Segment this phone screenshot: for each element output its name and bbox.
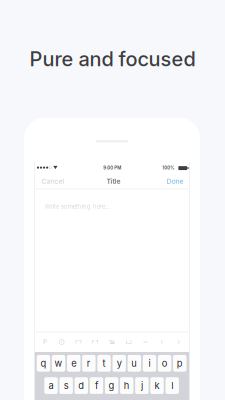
staticText: w bbox=[55, 358, 63, 369]
button[interactable]: Formatting option bbox=[58, 337, 66, 346]
staticText: u bbox=[131, 358, 137, 369]
button[interactable]: k bbox=[150, 377, 164, 394]
staticText: Write something here… bbox=[45, 203, 110, 210]
staticText: a bbox=[48, 380, 53, 391]
staticText: k bbox=[154, 380, 159, 391]
button[interactable]: g bbox=[105, 377, 118, 394]
button[interactable]: Formatting option bbox=[74, 337, 82, 346]
button[interactable]: Formatting option bbox=[108, 337, 116, 346]
staticText: i bbox=[148, 358, 150, 369]
staticText: j bbox=[141, 380, 143, 391]
button[interactable]: j bbox=[135, 377, 149, 394]
button[interactable]: d bbox=[75, 377, 88, 394]
staticText: e bbox=[71, 358, 76, 369]
staticText: h bbox=[124, 380, 130, 391]
staticText: 100% bbox=[162, 165, 174, 170]
button[interactable]: e bbox=[67, 355, 80, 372]
staticText: p bbox=[177, 358, 183, 369]
button[interactable]: r bbox=[82, 355, 96, 372]
button[interactable]: p bbox=[173, 355, 186, 372]
staticText: q bbox=[40, 358, 46, 369]
button[interactable]: u bbox=[128, 355, 141, 372]
staticText: o bbox=[162, 358, 168, 369]
staticText: t bbox=[102, 358, 105, 369]
button[interactable]: q bbox=[37, 355, 50, 372]
button[interactable]: Formatting option bbox=[41, 337, 49, 346]
staticText: r bbox=[87, 358, 91, 369]
staticText: Pure and focused bbox=[29, 47, 195, 71]
staticText: f bbox=[95, 380, 98, 391]
staticText: g bbox=[109, 380, 115, 391]
button[interactable]: l bbox=[165, 377, 179, 394]
button[interactable]: Formatting option bbox=[158, 337, 166, 346]
button[interactable]: h bbox=[120, 377, 133, 394]
button[interactable]: y bbox=[112, 355, 126, 372]
staticText: s bbox=[64, 380, 69, 391]
staticText: d bbox=[78, 380, 84, 391]
button[interactable]: Formatting option bbox=[91, 337, 99, 346]
staticText: l bbox=[171, 380, 173, 391]
staticText: Title bbox=[107, 177, 121, 185]
staticText: 9:00 PM bbox=[103, 165, 121, 170]
staticText: P bbox=[43, 338, 47, 346]
button[interactable]: Done bbox=[163, 174, 187, 189]
staticText: Done bbox=[166, 177, 183, 185]
staticText: Cancel bbox=[41, 177, 64, 185]
button[interactable]: Formatting option bbox=[175, 337, 183, 346]
button[interactable]: o bbox=[158, 355, 171, 372]
button[interactable]: t bbox=[97, 355, 111, 372]
button[interactable]: Formatting option bbox=[141, 337, 149, 346]
button[interactable]: i bbox=[143, 355, 156, 372]
staticText: y bbox=[117, 358, 122, 369]
button[interactable]: Formatting option bbox=[125, 337, 133, 346]
button[interactable]: Cancel bbox=[38, 174, 68, 189]
button[interactable]: f bbox=[90, 377, 103, 394]
button[interactable]: a bbox=[44, 377, 58, 394]
button[interactable]: w bbox=[52, 355, 65, 372]
button[interactable]: s bbox=[59, 377, 73, 394]
